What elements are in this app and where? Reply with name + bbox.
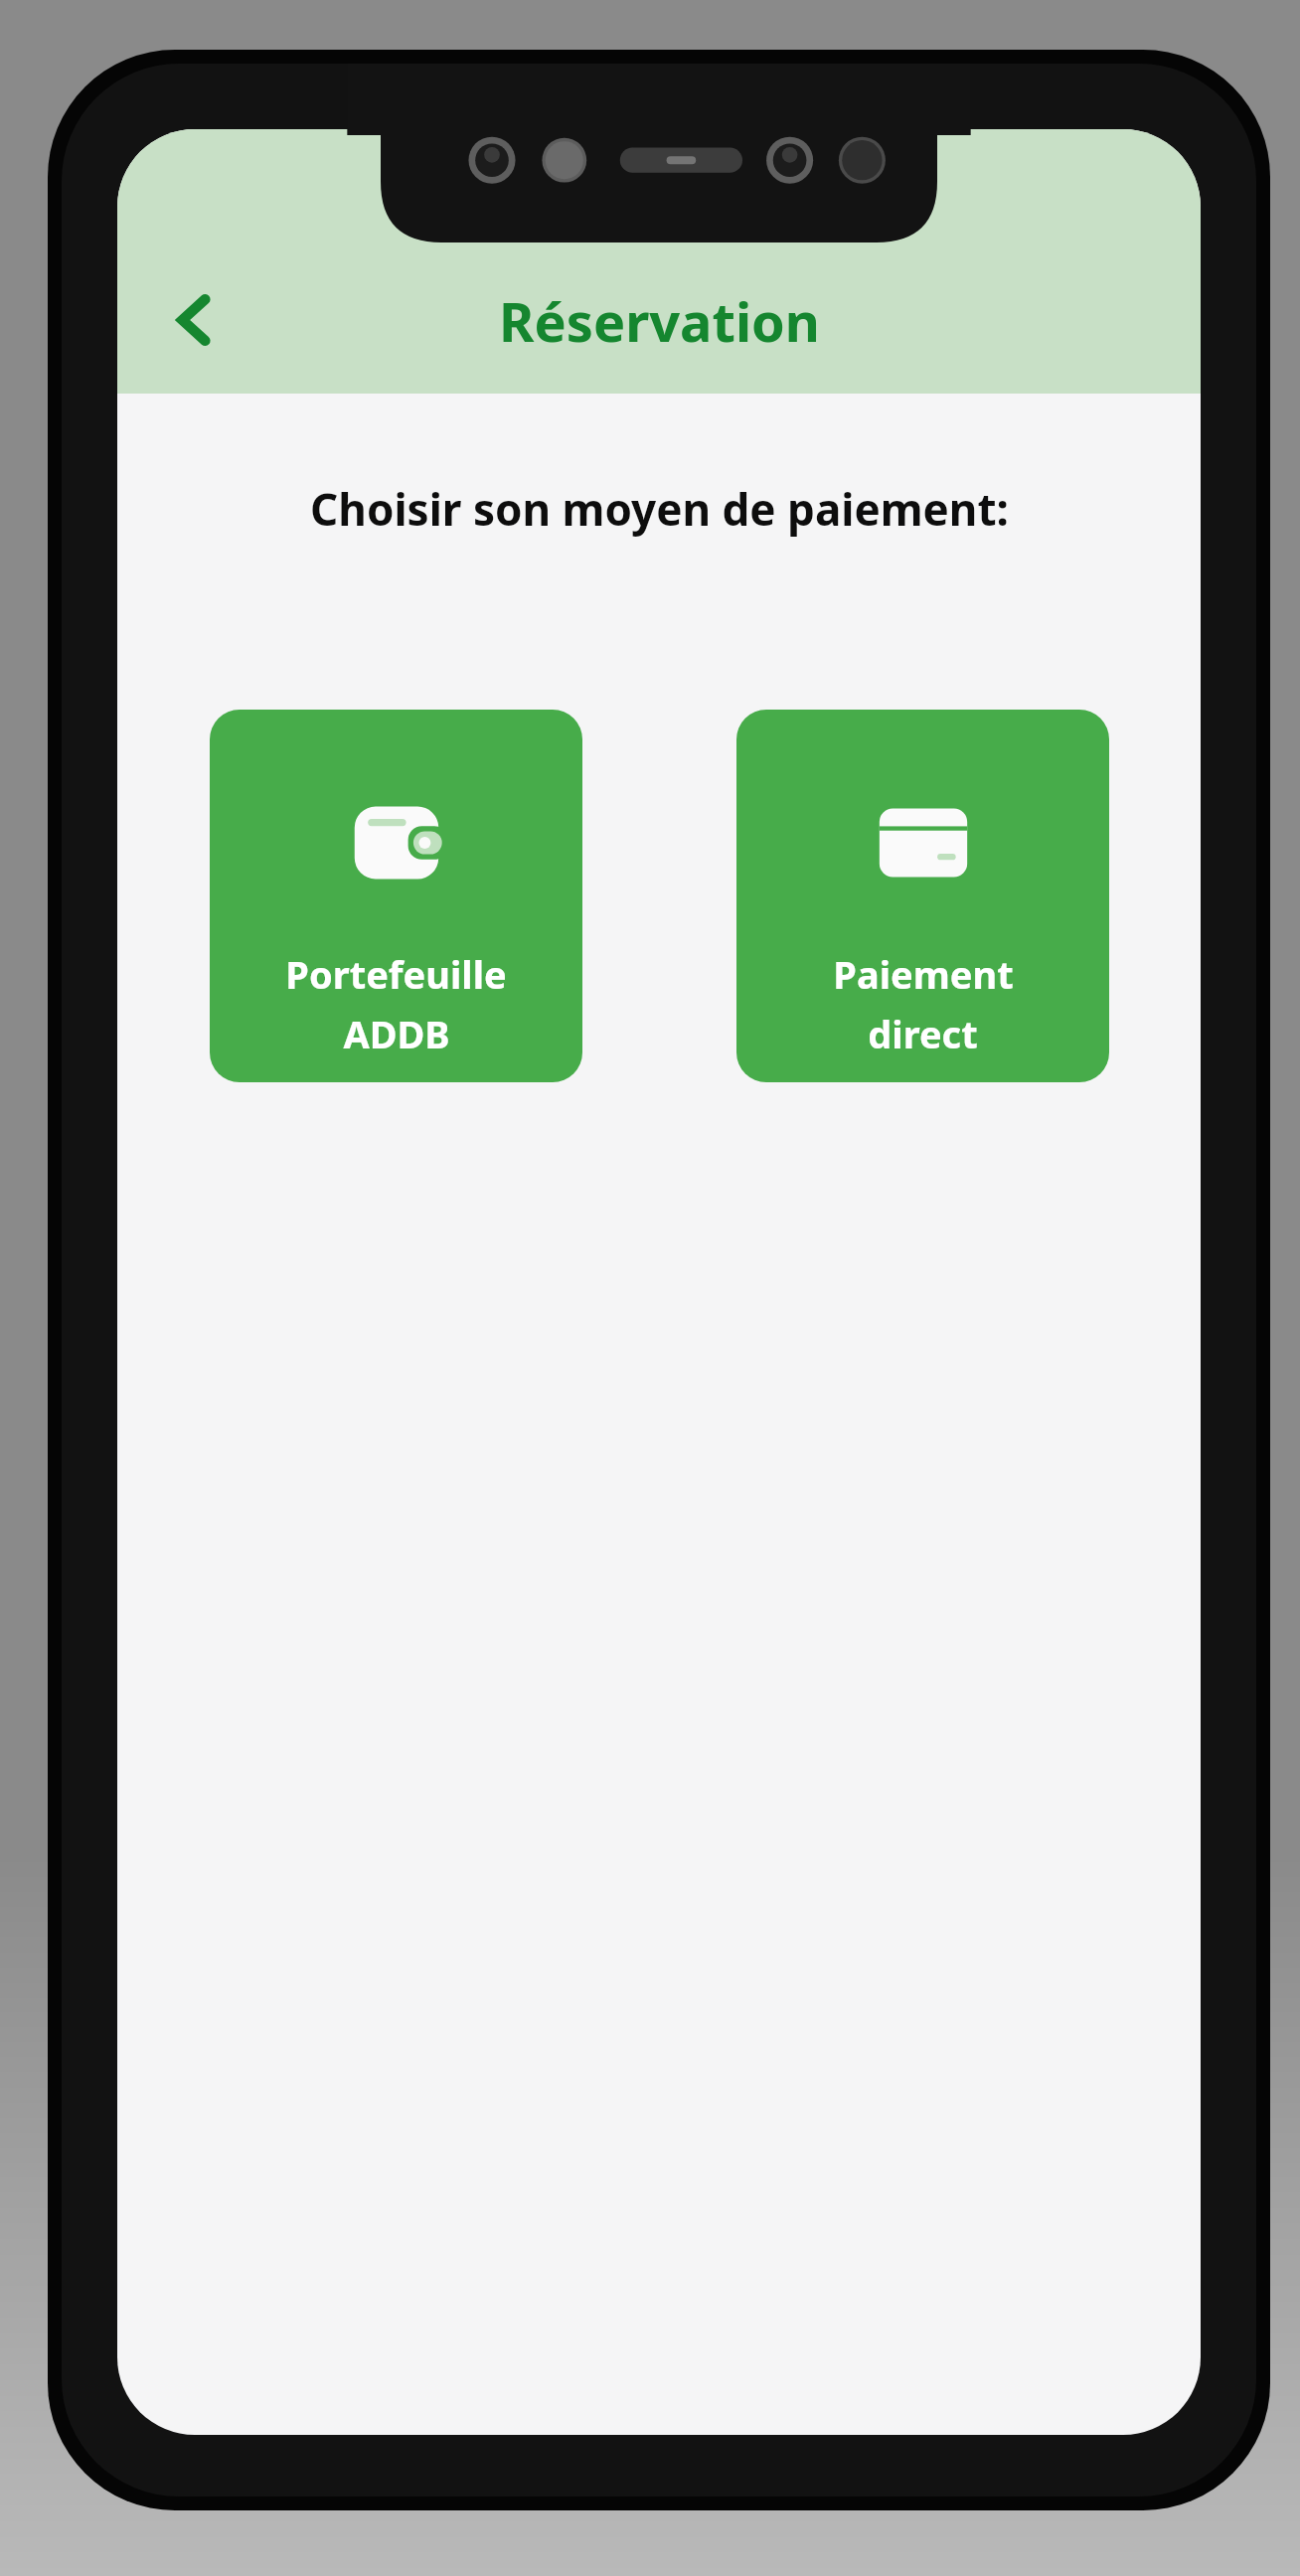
staticText: direct <box>868 1008 978 1059</box>
staticText: Portefeuille <box>285 948 507 1000</box>
button[interactable]: Portefeuille <box>210 710 582 1082</box>
button[interactable]: Back <box>147 272 243 368</box>
button[interactable]: Paiement <box>736 710 1109 1082</box>
staticText: ADDB <box>343 1008 450 1059</box>
staticText: Réservation <box>499 284 820 358</box>
staticText: Paiement <box>833 948 1014 1000</box>
staticText: Choisir son moyen de paiement: <box>310 479 1009 539</box>
